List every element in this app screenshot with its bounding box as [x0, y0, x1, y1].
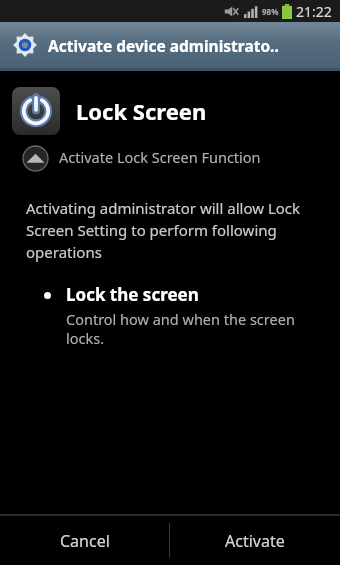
staticText: 21:22	[296, 2, 332, 21]
other: Collapse	[22, 145, 49, 172]
staticText: 98%	[262, 6, 279, 17]
staticText: Lock the screen	[66, 283, 199, 306]
button[interactable]: Cancel	[0, 516, 169, 565]
staticText: Lock Screen	[76, 96, 207, 126]
button[interactable]: Activate	[170, 516, 340, 565]
staticText: Activate	[225, 530, 285, 552]
staticText: Activate Lock Screen Function	[59, 147, 261, 167]
button[interactable]: Lock Screen	[12, 87, 340, 135]
button[interactable]: Collapse	[22, 145, 320, 172]
staticText: Activate device administrato..	[48, 35, 279, 56]
staticText: Activating administrator will allow Lock…	[26, 198, 318, 263]
staticText: Control how and when the screen locks.	[66, 309, 320, 348]
staticText: Cancel	[60, 530, 110, 552]
